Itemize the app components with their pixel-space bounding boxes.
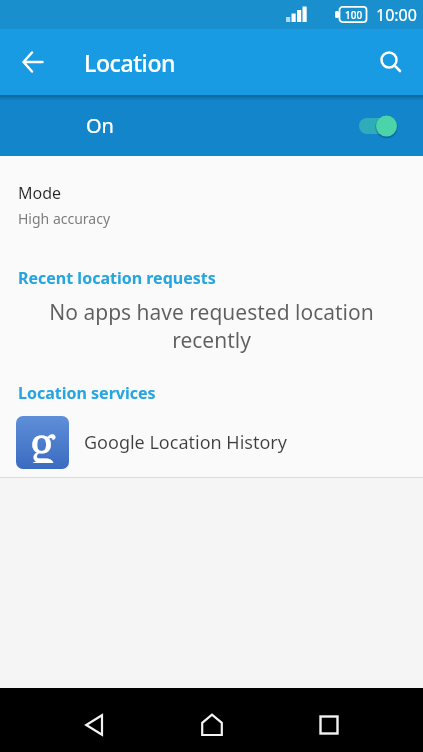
button[interactable] — [305, 696, 353, 744]
staticText: Location services — [18, 382, 156, 404]
staticText: Google Location History — [84, 430, 287, 455]
button[interactable]: Mode — [0, 156, 423, 236]
button[interactable]: g — [0, 416, 423, 469]
button[interactable] — [71, 696, 119, 744]
staticText: No apps have requested location recently — [0, 298, 423, 354]
button[interactable] — [367, 38, 415, 86]
staticText: Location — [84, 47, 176, 78]
staticText: Mode — [18, 182, 62, 204]
staticText: 10:00 — [376, 4, 417, 26]
staticText: On — [86, 112, 114, 139]
staticText: Recent location requests — [18, 267, 216, 289]
button[interactable]: On — [0, 95, 423, 156]
button[interactable] — [9, 38, 57, 86]
staticText: High accuracy — [18, 209, 111, 228]
button[interactable] — [188, 696, 236, 744]
staticText: 100 — [345, 8, 363, 22]
staticText: g — [29, 416, 56, 463]
